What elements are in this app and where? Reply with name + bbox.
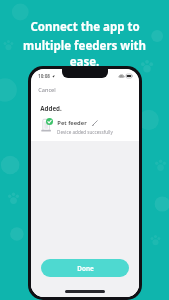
staticText: Done	[77, 264, 94, 273]
staticText: Cancel	[38, 86, 56, 94]
staticText: 10:08	[38, 73, 50, 79]
staticText: multiple feeders with ease.	[8, 38, 161, 70]
button[interactable]: Pet feeder	[40, 118, 131, 135]
staticText: Device added successfully	[57, 129, 113, 135]
staticText: Added.	[40, 104, 62, 112]
button[interactable]: Edit device name	[91, 119, 99, 127]
staticText: Pet feeder	[57, 119, 87, 127]
staticText: Connect the app to	[30, 19, 140, 35]
button[interactable]: Done	[41, 259, 129, 277]
button[interactable]: Cancel	[35, 84, 59, 96]
